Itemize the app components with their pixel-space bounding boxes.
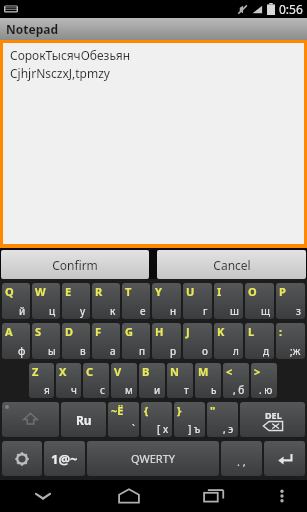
button[interactable]: Enter bbox=[264, 441, 305, 476]
staticText: ц bbox=[49, 304, 56, 318]
staticText: N bbox=[170, 364, 179, 379]
button[interactable]: Confirm bbox=[1, 250, 149, 279]
staticText: е bbox=[140, 304, 146, 318]
staticText: й bbox=[19, 304, 26, 318]
button[interactable]: 1@~ bbox=[44, 441, 85, 476]
button[interactable]: H bbox=[152, 323, 181, 359]
staticText: 0:56 bbox=[279, 1, 303, 17]
button[interactable]: . , bbox=[221, 441, 262, 476]
button[interactable]: } bbox=[174, 402, 205, 437]
staticText: к bbox=[110, 304, 116, 318]
staticText: о bbox=[202, 344, 208, 358]
button[interactable]: QWERTY bbox=[87, 441, 219, 476]
button[interactable]: Q bbox=[2, 283, 30, 319]
button[interactable]: U bbox=[183, 283, 212, 319]
staticText: ч bbox=[71, 383, 77, 397]
staticText: K bbox=[217, 324, 225, 339]
staticText: ` bbox=[132, 422, 135, 436]
button[interactable]: More options bbox=[256, 480, 307, 512]
button[interactable]: E bbox=[62, 283, 90, 319]
staticText: F bbox=[95, 324, 102, 339]
button[interactable]: O bbox=[245, 283, 274, 319]
staticText: DEL bbox=[265, 409, 282, 421]
button[interactable]: N bbox=[167, 363, 193, 398]
staticText: O bbox=[248, 284, 257, 299]
staticText: . ю bbox=[259, 383, 273, 397]
button[interactable]: Delete bbox=[240, 402, 305, 437]
staticText: а bbox=[110, 344, 116, 358]
button[interactable]: Ru bbox=[61, 402, 106, 437]
staticText: ;ж bbox=[290, 344, 301, 358]
staticText: X bbox=[59, 364, 67, 379]
button[interactable]: M bbox=[195, 363, 221, 398]
staticText: я bbox=[44, 383, 50, 397]
staticText: м bbox=[125, 383, 133, 397]
button[interactable]: Y bbox=[152, 283, 181, 319]
button[interactable]: K bbox=[214, 323, 243, 359]
button[interactable]: P bbox=[276, 283, 305, 319]
staticText: ь bbox=[211, 383, 217, 397]
staticText: , б bbox=[233, 383, 245, 397]
button[interactable]: Settings bbox=[2, 441, 42, 476]
staticText: д bbox=[263, 344, 270, 358]
button[interactable]: Shift bbox=[2, 402, 59, 437]
staticText: Confirm bbox=[52, 257, 98, 273]
button[interactable]: > bbox=[251, 363, 277, 398]
staticText: C bbox=[86, 364, 94, 379]
button[interactable]: B bbox=[139, 363, 165, 398]
staticText: п bbox=[139, 344, 146, 358]
button[interactable]: < bbox=[223, 363, 249, 398]
button[interactable]: J bbox=[183, 323, 212, 359]
staticText: Y bbox=[155, 284, 162, 299]
staticText: в bbox=[80, 344, 86, 358]
button[interactable]: : bbox=[276, 323, 305, 359]
staticText: T bbox=[125, 284, 132, 299]
button[interactable]: X bbox=[56, 363, 81, 398]
staticText: V bbox=[114, 364, 122, 379]
staticText: ы bbox=[48, 344, 56, 358]
staticText: ] ъ bbox=[188, 422, 201, 436]
button[interactable]: Back bbox=[0, 480, 86, 512]
staticText: W bbox=[35, 284, 46, 299]
button[interactable]: G bbox=[122, 323, 150, 359]
button[interactable]: " bbox=[207, 402, 238, 437]
staticText: у bbox=[80, 304, 86, 318]
staticText: ~Ё bbox=[111, 403, 124, 418]
staticText: R bbox=[95, 284, 103, 299]
button[interactable]: Recent apps bbox=[171, 480, 256, 512]
staticText: ф bbox=[18, 344, 26, 358]
button[interactable]: D bbox=[62, 323, 90, 359]
button[interactable]: W bbox=[32, 283, 60, 319]
button[interactable]: Z bbox=[29, 363, 54, 398]
staticText: Cancel bbox=[213, 257, 251, 273]
button[interactable]: { bbox=[141, 402, 172, 437]
button[interactable]: L bbox=[245, 323, 274, 359]
button[interactable]: СорокТысячОбезьян bbox=[3, 43, 304, 244]
button[interactable]: Home bbox=[86, 480, 171, 512]
staticText: СорокТысячОбезьян bbox=[10, 47, 131, 63]
staticText: , э bbox=[223, 422, 234, 436]
button[interactable]: V bbox=[111, 363, 137, 398]
button[interactable]: I bbox=[214, 283, 243, 319]
staticText: щ bbox=[261, 304, 270, 318]
button[interactable]: A bbox=[2, 323, 30, 359]
staticText: G bbox=[125, 324, 133, 339]
button[interactable]: R bbox=[92, 283, 120, 319]
staticText: з bbox=[296, 304, 301, 318]
staticText: CjhjrNsczxJ,tpmzy bbox=[10, 65, 110, 81]
button[interactable]: C bbox=[83, 363, 109, 398]
button[interactable]: F bbox=[92, 323, 120, 359]
button[interactable]: ~Ё bbox=[108, 402, 139, 437]
staticText: Notepad bbox=[6, 21, 58, 37]
staticText: с bbox=[100, 383, 105, 397]
staticText: U bbox=[186, 284, 195, 299]
staticText: > bbox=[254, 364, 261, 379]
staticText: D bbox=[65, 324, 74, 339]
staticText: Ru bbox=[76, 412, 92, 428]
staticText: г bbox=[203, 304, 208, 318]
staticText: л bbox=[233, 344, 239, 358]
button[interactable]: Cancel bbox=[157, 250, 306, 279]
staticText: I bbox=[217, 284, 222, 299]
button[interactable]: S bbox=[32, 323, 60, 359]
button[interactable]: T bbox=[122, 283, 150, 319]
